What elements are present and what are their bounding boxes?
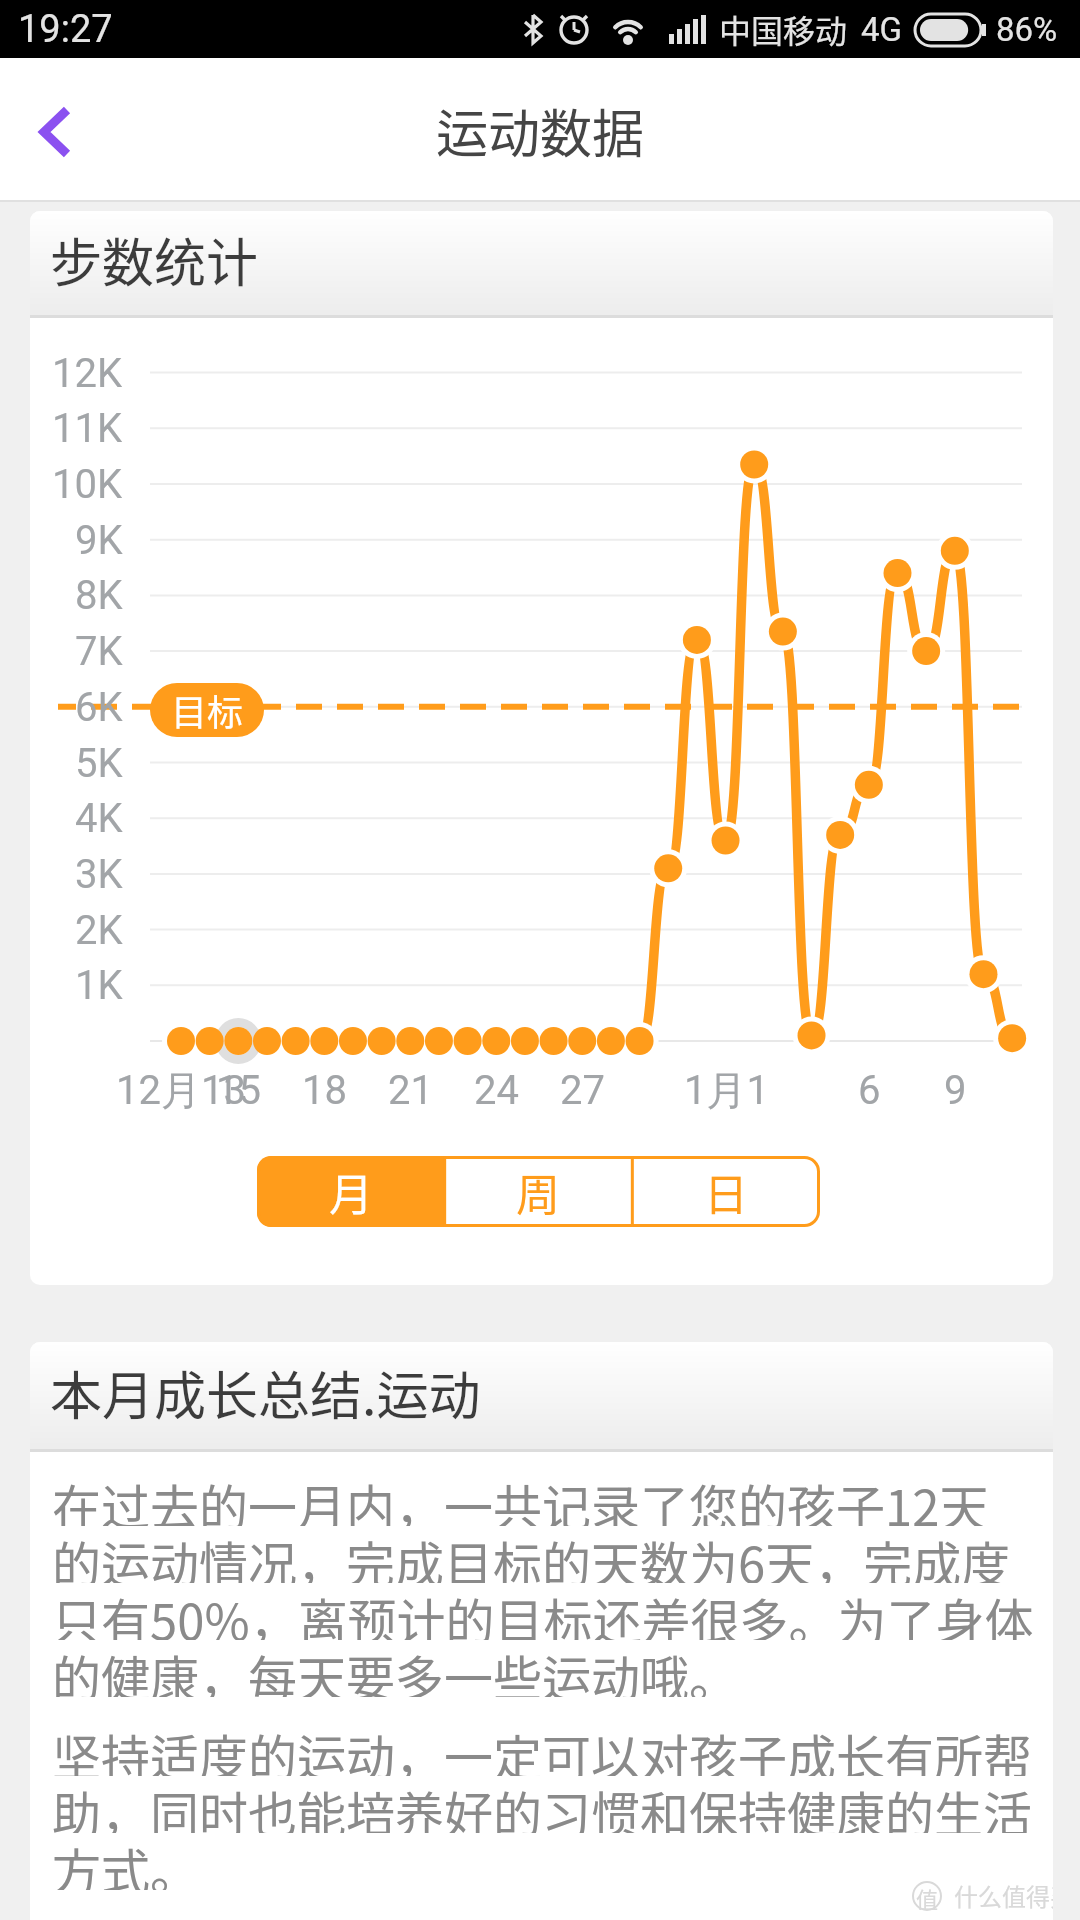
staticText: 1月1 <box>684 1065 769 1115</box>
staticText: 12K <box>52 350 123 397</box>
staticText: 4K <box>75 795 123 842</box>
staticText: 86% <box>996 10 1058 49</box>
staticText: 周 <box>516 1160 560 1224</box>
staticText: 中国移动 <box>719 6 848 52</box>
staticText: 9 <box>944 1067 967 1114</box>
staticText: 什么值得买 <box>954 1878 1053 1913</box>
staticText: 助，同时也能培养好的习惯和保持健康的生活 <box>52 1776 1033 1833</box>
staticText: 8K <box>75 572 123 619</box>
staticText: 4G <box>861 10 903 49</box>
staticText: 19:27 <box>18 7 113 52</box>
staticText: 6K <box>75 684 123 731</box>
staticText: 运动数据 <box>436 93 645 168</box>
staticText: 27 <box>560 1067 605 1114</box>
staticText: 的健康，每天要多一些运动哦。 <box>52 1640 739 1697</box>
staticText: 方式。 <box>52 1833 200 1890</box>
button[interactable]: 日 <box>632 1156 820 1227</box>
staticText: 步数统计 <box>50 222 259 297</box>
staticText: 15 <box>216 1067 261 1114</box>
staticText: 11K <box>52 405 123 452</box>
staticText: 24 <box>474 1067 519 1114</box>
button[interactable]: 月 <box>257 1156 444 1227</box>
staticText: 在过去的一月内，一共记录了您的孩子12天 <box>52 1469 989 1526</box>
staticText: 只有50%，离预计的目标还差很多。为了身体 <box>52 1583 1034 1640</box>
button[interactable] <box>11 88 101 178</box>
staticText: 3K <box>75 851 123 898</box>
staticText: 月 <box>329 1160 373 1224</box>
staticText: 21 <box>388 1067 433 1114</box>
staticText: 18 <box>302 1067 347 1114</box>
staticText: 坚持适度的运动，一定可以对孩子成长有所帮 <box>52 1719 1033 1776</box>
staticText: 值 <box>916 1882 939 1910</box>
staticText: 本月成长总结.运动 <box>50 1355 481 1430</box>
staticText: 7K <box>75 628 123 675</box>
staticText: 的运动情况，完成目标的天数为6天，完成度 <box>52 1526 1011 1583</box>
staticText: 2K <box>75 907 123 954</box>
staticText: 10K <box>52 461 123 508</box>
staticText: 1K <box>75 962 123 1009</box>
staticText: 5K <box>75 740 123 787</box>
staticText: 目标 <box>171 684 244 736</box>
staticText: 6 <box>858 1067 881 1114</box>
staticText: 日 <box>704 1160 748 1224</box>
staticText: 9K <box>75 517 123 564</box>
button[interactable]: 周 <box>444 1156 632 1227</box>
staticText: 12月13 <box>116 1065 246 1115</box>
